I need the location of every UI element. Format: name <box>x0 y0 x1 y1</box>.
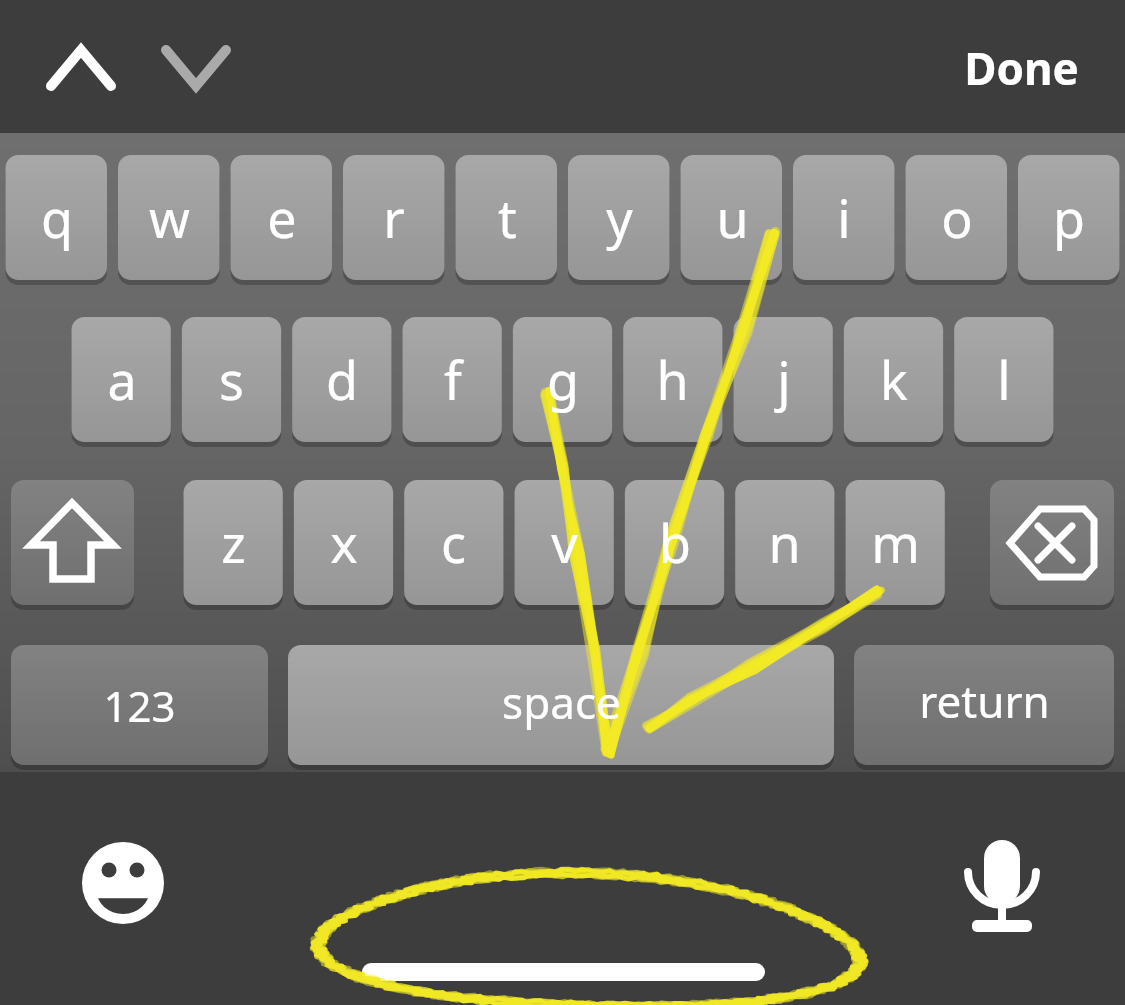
button[interactable]: f <box>403 317 502 442</box>
button[interactable]: return <box>854 641 1114 761</box>
button[interactable]: s <box>182 317 281 442</box>
staticText: l <box>997 344 1011 415</box>
staticText: o <box>941 182 973 253</box>
staticText: z <box>221 507 246 578</box>
staticText: d <box>326 344 358 415</box>
button[interactable]: r <box>343 155 445 280</box>
staticText: s <box>219 344 244 415</box>
staticText: t <box>498 182 517 253</box>
button[interactable]: z <box>184 480 283 605</box>
button[interactable]: y <box>568 155 670 280</box>
staticText: w <box>149 182 190 253</box>
button[interactable]: b <box>625 480 724 605</box>
button[interactable]: n <box>735 480 834 605</box>
button[interactable]: i <box>793 155 895 280</box>
button[interactable]: c <box>404 480 503 605</box>
staticText: p <box>1053 182 1085 253</box>
button[interactable]: Emoji keyboard <box>67 827 179 939</box>
button[interactable]: Next field <box>144 16 248 120</box>
button[interactable]: t <box>456 155 558 280</box>
button[interactable]: Dictation <box>946 821 1058 945</box>
staticText: 123 <box>103 677 176 734</box>
staticText: r <box>383 182 405 253</box>
button[interactable]: j <box>734 317 833 442</box>
staticText: x <box>330 507 358 578</box>
button[interactable]: d <box>292 317 391 442</box>
staticText: m <box>871 507 920 578</box>
staticText: Done <box>964 38 1079 98</box>
button[interactable]: space <box>288 642 834 762</box>
staticText: v <box>551 507 578 578</box>
staticText: a <box>107 344 137 415</box>
button[interactable]: v <box>515 480 614 605</box>
button[interactable]: x <box>294 480 393 605</box>
button[interactable]: p <box>1018 155 1120 280</box>
staticText: i <box>837 182 851 253</box>
staticText: j <box>777 344 791 415</box>
staticText: n <box>768 507 801 578</box>
staticText: q <box>41 182 73 253</box>
button[interactable]: h <box>623 317 722 442</box>
button[interactable]: q <box>6 155 108 280</box>
staticText: b <box>659 507 691 578</box>
button[interactable]: w <box>118 155 220 280</box>
button[interactable]: o <box>906 155 1008 280</box>
button[interactable]: a <box>72 317 171 442</box>
button[interactable]: u <box>681 155 783 280</box>
button[interactable]: l <box>954 317 1053 442</box>
button[interactable]: g <box>513 317 612 442</box>
staticText: y <box>606 182 633 253</box>
button[interactable]: m <box>846 480 945 605</box>
button[interactable]: e <box>231 155 333 280</box>
button[interactable]: Shift <box>11 480 134 605</box>
button[interactable]: k <box>844 317 943 442</box>
staticText: c <box>441 507 466 578</box>
staticText: e <box>267 182 297 253</box>
button[interactable]: Backspace <box>990 480 1114 605</box>
button[interactable]: Previous field <box>29 16 133 120</box>
button[interactable]: 123 <box>11 645 268 765</box>
staticText: u <box>716 182 749 253</box>
staticText: k <box>880 344 908 415</box>
button[interactable]: Done <box>931 20 1111 116</box>
staticText: f <box>444 344 462 415</box>
staticText: return <box>919 671 1050 731</box>
staticText: g <box>547 344 579 415</box>
staticText: space <box>502 672 621 732</box>
staticText: h <box>656 344 689 415</box>
